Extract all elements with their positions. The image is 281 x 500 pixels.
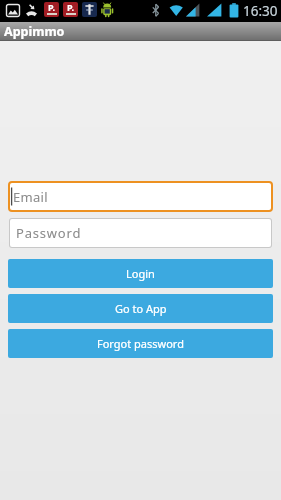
staticText: Appimmo bbox=[4, 23, 65, 40]
staticText: P. bbox=[48, 2, 55, 13]
staticText: Login bbox=[126, 266, 155, 281]
staticText: Forgot password bbox=[97, 336, 184, 351]
staticText: P. bbox=[67, 2, 74, 13]
staticText: Password bbox=[16, 224, 82, 242]
staticText: 16:30 bbox=[243, 2, 278, 20]
staticText: Email bbox=[13, 188, 48, 206]
staticText: Go to App bbox=[115, 301, 167, 316]
